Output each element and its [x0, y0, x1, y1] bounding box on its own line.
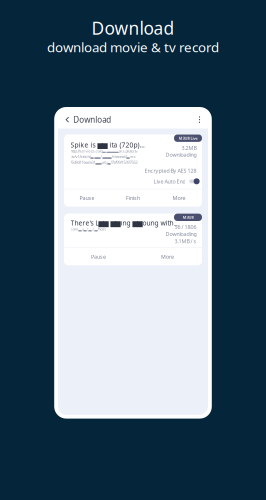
button[interactable]: Pause	[64, 189, 110, 207]
staticText: More	[161, 253, 174, 260]
staticText: Download	[91, 16, 174, 39]
button[interactable]: More	[133, 248, 202, 265]
button[interactable]: More options	[193, 111, 206, 128]
staticText: com▃u▃c▃.c▃/host	[71, 226, 106, 232]
staticText: Finish	[126, 194, 140, 201]
staticText: There's L▆▆ ▆▆ing ▆▆oung with the C...	[71, 218, 179, 227]
button[interactable]: Pause	[64, 248, 133, 265]
staticText: M3U8	[182, 215, 193, 220]
button[interactable]: Download	[58, 111, 111, 128]
staticText: More	[172, 194, 185, 201]
staticText: M3U8 Live	[178, 135, 197, 141]
staticText: Downloading	[166, 230, 197, 238]
button[interactable]: More	[156, 189, 202, 207]
staticText: Encrypted By AES 128	[145, 167, 197, 174]
staticText: Live Auto End	[153, 178, 185, 185]
button[interactable]: Finish	[110, 189, 156, 207]
staticText: .tv/v1/stitch/▃ ▃▃/ ▃▃▃/channel/▃mx	[71, 154, 136, 159]
staticText: Pause	[79, 194, 94, 201]
staticText: Pause	[91, 253, 106, 260]
staticText: http://services.co/g▃ ▃▃▃▃prs.pluto.tv	[71, 148, 138, 153]
staticText: Spike is ▆▆ ita (720p).mp4	[71, 140, 145, 149]
staticText: Downloading	[166, 151, 197, 158]
staticText: /5d9d11baeb31▃▃wt.j▃/7bf99/15397552	[71, 159, 138, 165]
staticText: 56 / 1806	[175, 223, 197, 230]
staticText: download movie & tv record	[47, 38, 219, 56]
staticText: Download	[73, 114, 111, 125]
staticText: 3.1MB / s	[175, 238, 197, 245]
staticText: 3.2MB	[182, 144, 197, 151]
